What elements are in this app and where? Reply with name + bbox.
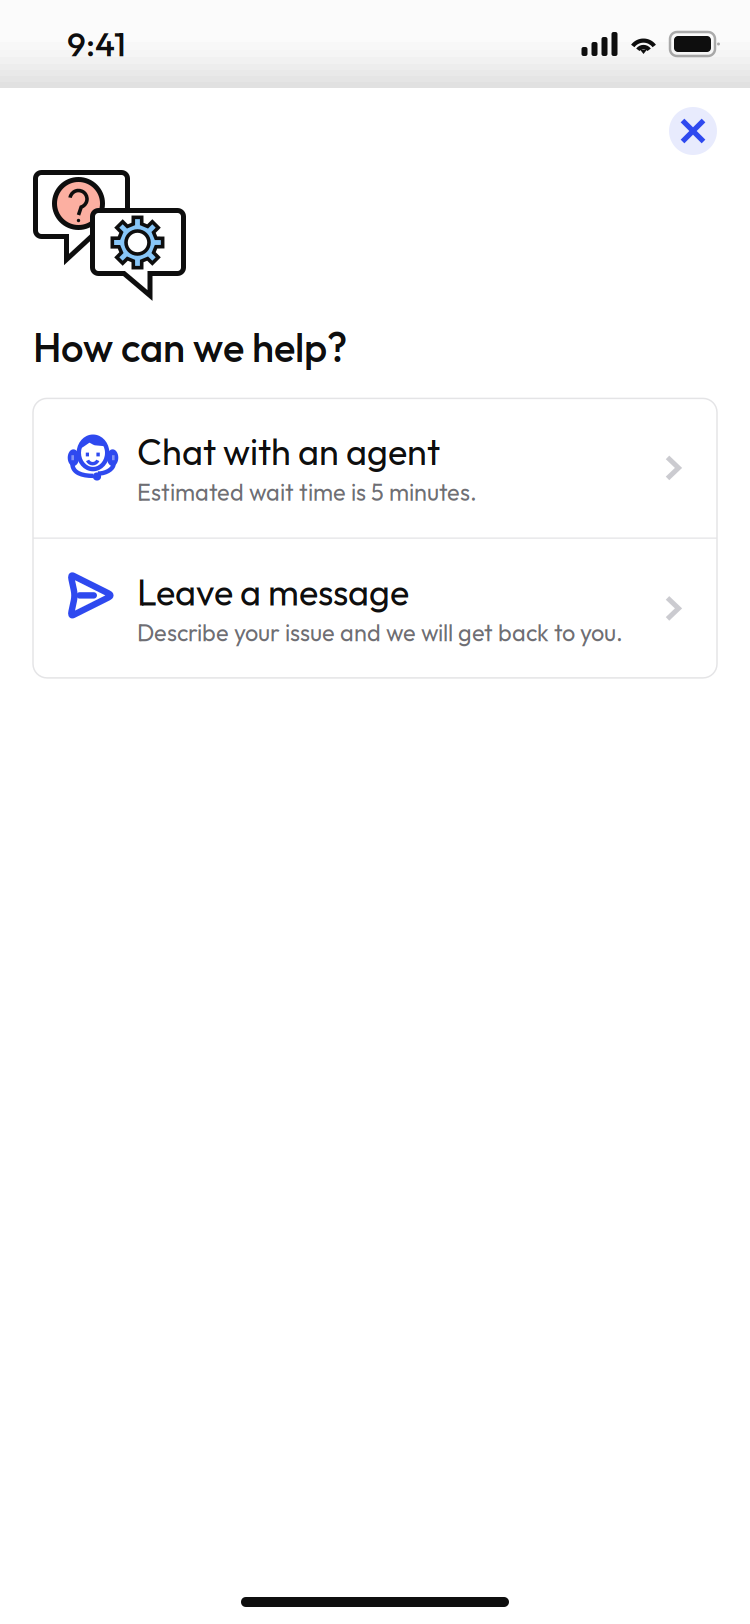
staticText: Describe your issue and we will get back…: [137, 618, 623, 647]
staticText: How can we help?: [33, 322, 347, 372]
staticText: 9:41: [67, 23, 126, 65]
staticText: Leave a message: [137, 569, 409, 615]
button[interactable]: Close: [669, 107, 717, 155]
button[interactable]: Leave a message: [33, 539, 717, 678]
button[interactable]: Chat with an agent: [33, 398, 717, 537]
staticText: Chat with an agent: [137, 429, 440, 474]
staticText: Estimated wait time is 5 minutes.: [137, 477, 477, 507]
